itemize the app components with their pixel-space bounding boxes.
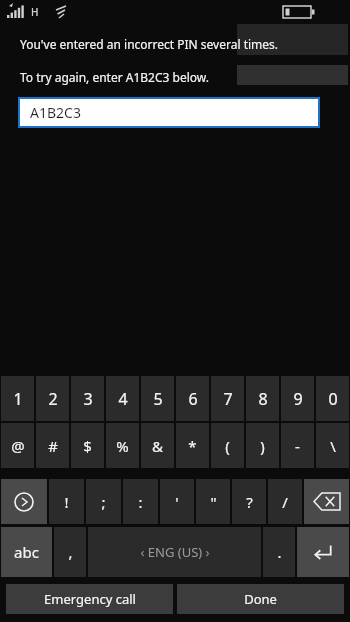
button[interactable]: " (196, 479, 230, 524)
staticText: 9 (293, 388, 303, 410)
staticText: A1B2C3 (30, 103, 81, 122)
staticText: : (138, 492, 143, 512)
button[interactable]: \ (316, 423, 349, 468)
staticText: $ (83, 436, 92, 456)
button[interactable]: Backspace (304, 479, 349, 524)
staticText: abc (14, 542, 39, 562)
button[interactable]: ‹ ENG (US) › (88, 527, 261, 577)
button[interactable]: Emergency call (6, 584, 173, 614)
staticText: 3 (83, 388, 93, 410)
staticText: To try again, enter A1B2C3 below. (20, 69, 209, 85)
button[interactable]: 2 (36, 376, 69, 421)
button[interactable]: More symbols (1, 479, 47, 524)
staticText: ‹ ENG (US) › (140, 543, 210, 561)
staticText: ! (64, 492, 69, 512)
button[interactable]: 7 (211, 376, 244, 421)
button[interactable]: abc (1, 527, 52, 577)
staticText: @ (11, 436, 25, 456)
button[interactable]: 5 (141, 376, 174, 421)
button[interactable]: , (54, 527, 86, 577)
button[interactable]: - (281, 423, 314, 468)
staticText: ) (260, 436, 265, 456)
staticText: ; (101, 492, 106, 512)
staticText: ' (175, 492, 179, 512)
button[interactable]: ( (211, 423, 244, 468)
staticText: 5 (153, 388, 163, 410)
staticText: 4 (118, 388, 128, 410)
button[interactable]: 1 (1, 376, 34, 421)
staticText: You've entered an incorrect PIN several … (20, 36, 279, 52)
button[interactable]: % (106, 423, 139, 468)
button[interactable]: . (263, 527, 295, 577)
button[interactable]: & (141, 423, 174, 468)
staticText: . (277, 542, 282, 562)
button[interactable]: Done (177, 584, 344, 614)
staticText: - (295, 436, 300, 456)
staticText: H (31, 5, 39, 19)
staticText: * (188, 436, 197, 456)
button[interactable]: Enter (297, 527, 349, 577)
button[interactable]: A1B2C3 (18, 97, 320, 128)
staticText: , (68, 542, 73, 562)
staticText: / (282, 492, 288, 512)
staticText: # (48, 436, 58, 456)
button[interactable]: * (176, 423, 209, 468)
button[interactable]: ) (246, 423, 279, 468)
button[interactable]: 0 (316, 376, 349, 421)
button[interactable]: 6 (176, 376, 209, 421)
staticText: % (116, 436, 129, 456)
button[interactable]: ; (86, 479, 121, 524)
staticText: 8 (258, 388, 268, 410)
button[interactable]: / (268, 479, 302, 524)
button[interactable]: ! (49, 479, 84, 524)
staticText: 7 (223, 388, 233, 410)
button[interactable]: @ (1, 423, 34, 468)
staticText: ? (246, 492, 253, 512)
staticText: " (210, 492, 217, 512)
staticText: Done (244, 590, 277, 608)
button[interactable]: # (36, 423, 69, 468)
button[interactable]: 3 (71, 376, 104, 421)
staticText: 2 (48, 388, 58, 410)
button[interactable]: : (123, 479, 158, 524)
staticText: Emergency call (44, 590, 136, 608)
staticText: 1 (13, 388, 23, 410)
button[interactable]: 9 (281, 376, 314, 421)
staticText: \ (330, 436, 336, 456)
button[interactable]: 4 (106, 376, 139, 421)
button[interactable]: ' (160, 479, 194, 524)
staticText: & (152, 436, 163, 456)
button[interactable]: $ (71, 423, 104, 468)
staticText: 0 (328, 388, 338, 410)
staticText: 6 (188, 388, 198, 410)
button[interactable]: 8 (246, 376, 279, 421)
staticText: ( (225, 436, 230, 456)
button[interactable]: ? (232, 479, 266, 524)
